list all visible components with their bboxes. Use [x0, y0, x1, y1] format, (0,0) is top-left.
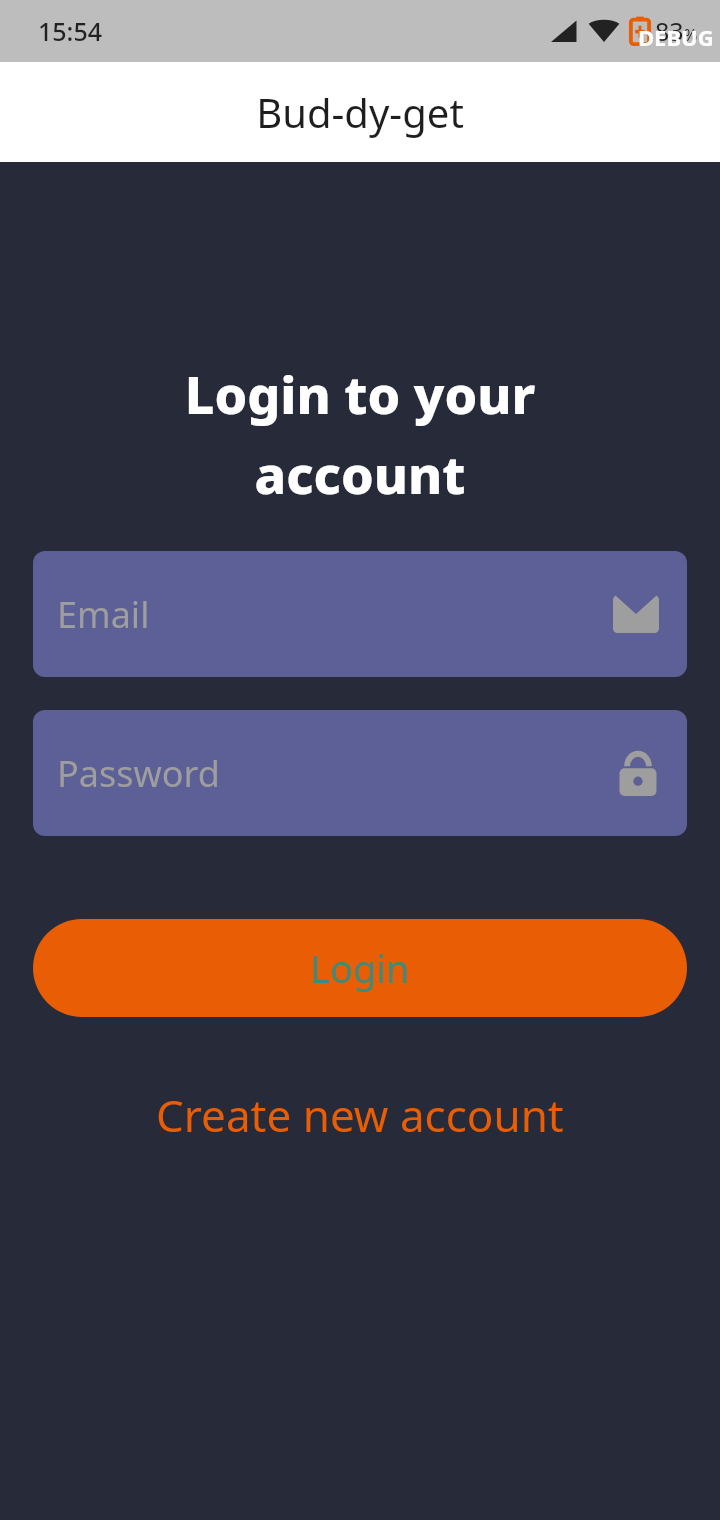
staticText: Login to your account [80, 358, 640, 509]
staticText: 83 [655, 14, 684, 48]
staticText: Email [57, 590, 613, 639]
button[interactable]: Password [33, 710, 687, 836]
button[interactable]: Create new account [144, 1079, 576, 1151]
button[interactable]: Login [33, 919, 687, 1017]
staticText: Password [57, 749, 617, 798]
staticText: 15:54 [38, 14, 103, 48]
staticText: Create new account [156, 1085, 564, 1145]
staticText: DEBUG [638, 22, 714, 52]
button[interactable]: Email [33, 551, 687, 677]
staticText: Login [310, 942, 410, 994]
other: Password [617, 749, 659, 797]
other: Email [613, 595, 659, 633]
staticText: Bud-dy-get [256, 85, 464, 139]
staticText: % [684, 24, 698, 46]
